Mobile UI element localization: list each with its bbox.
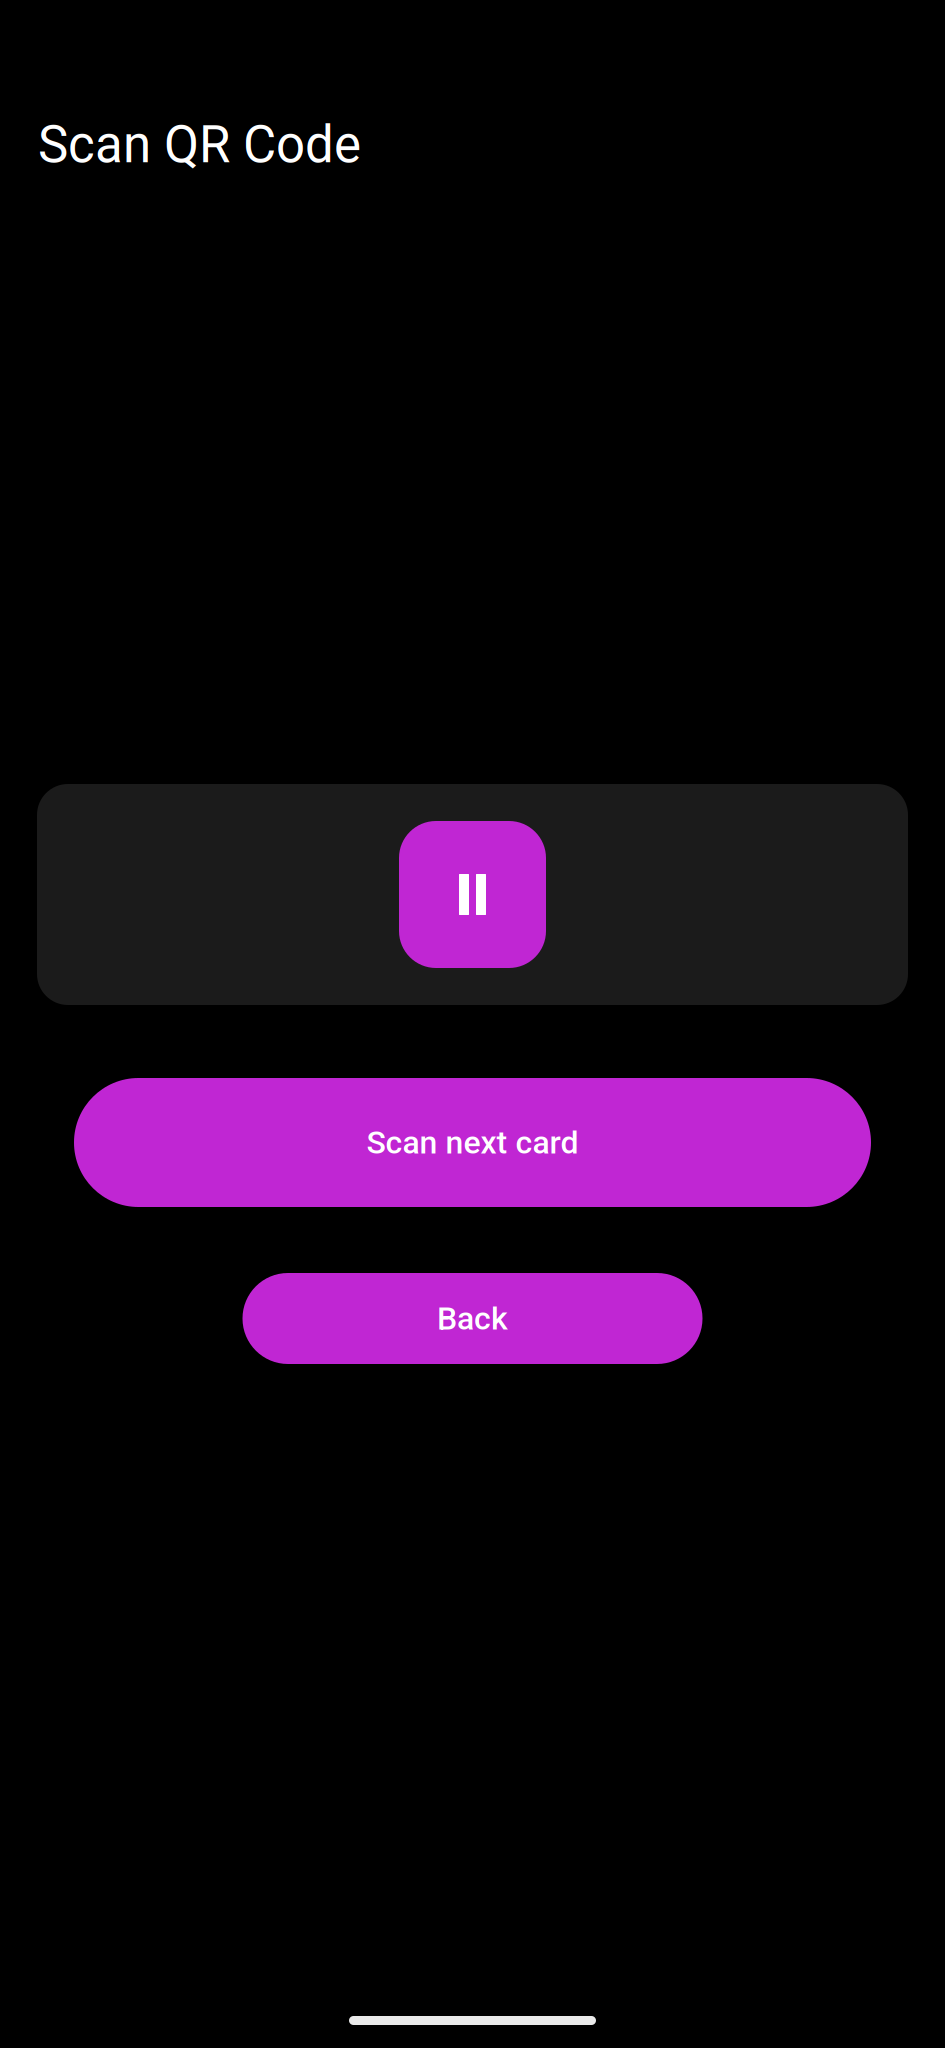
button[interactable]: Pause scanning: [399, 821, 546, 968]
staticText: Scan next card: [366, 1124, 578, 1161]
staticText: Scan QR Code: [38, 115, 361, 175]
staticText: Back: [437, 1300, 508, 1337]
button[interactable]: Scan next card: [74, 1078, 871, 1207]
button[interactable]: Back: [242, 1273, 702, 1364]
